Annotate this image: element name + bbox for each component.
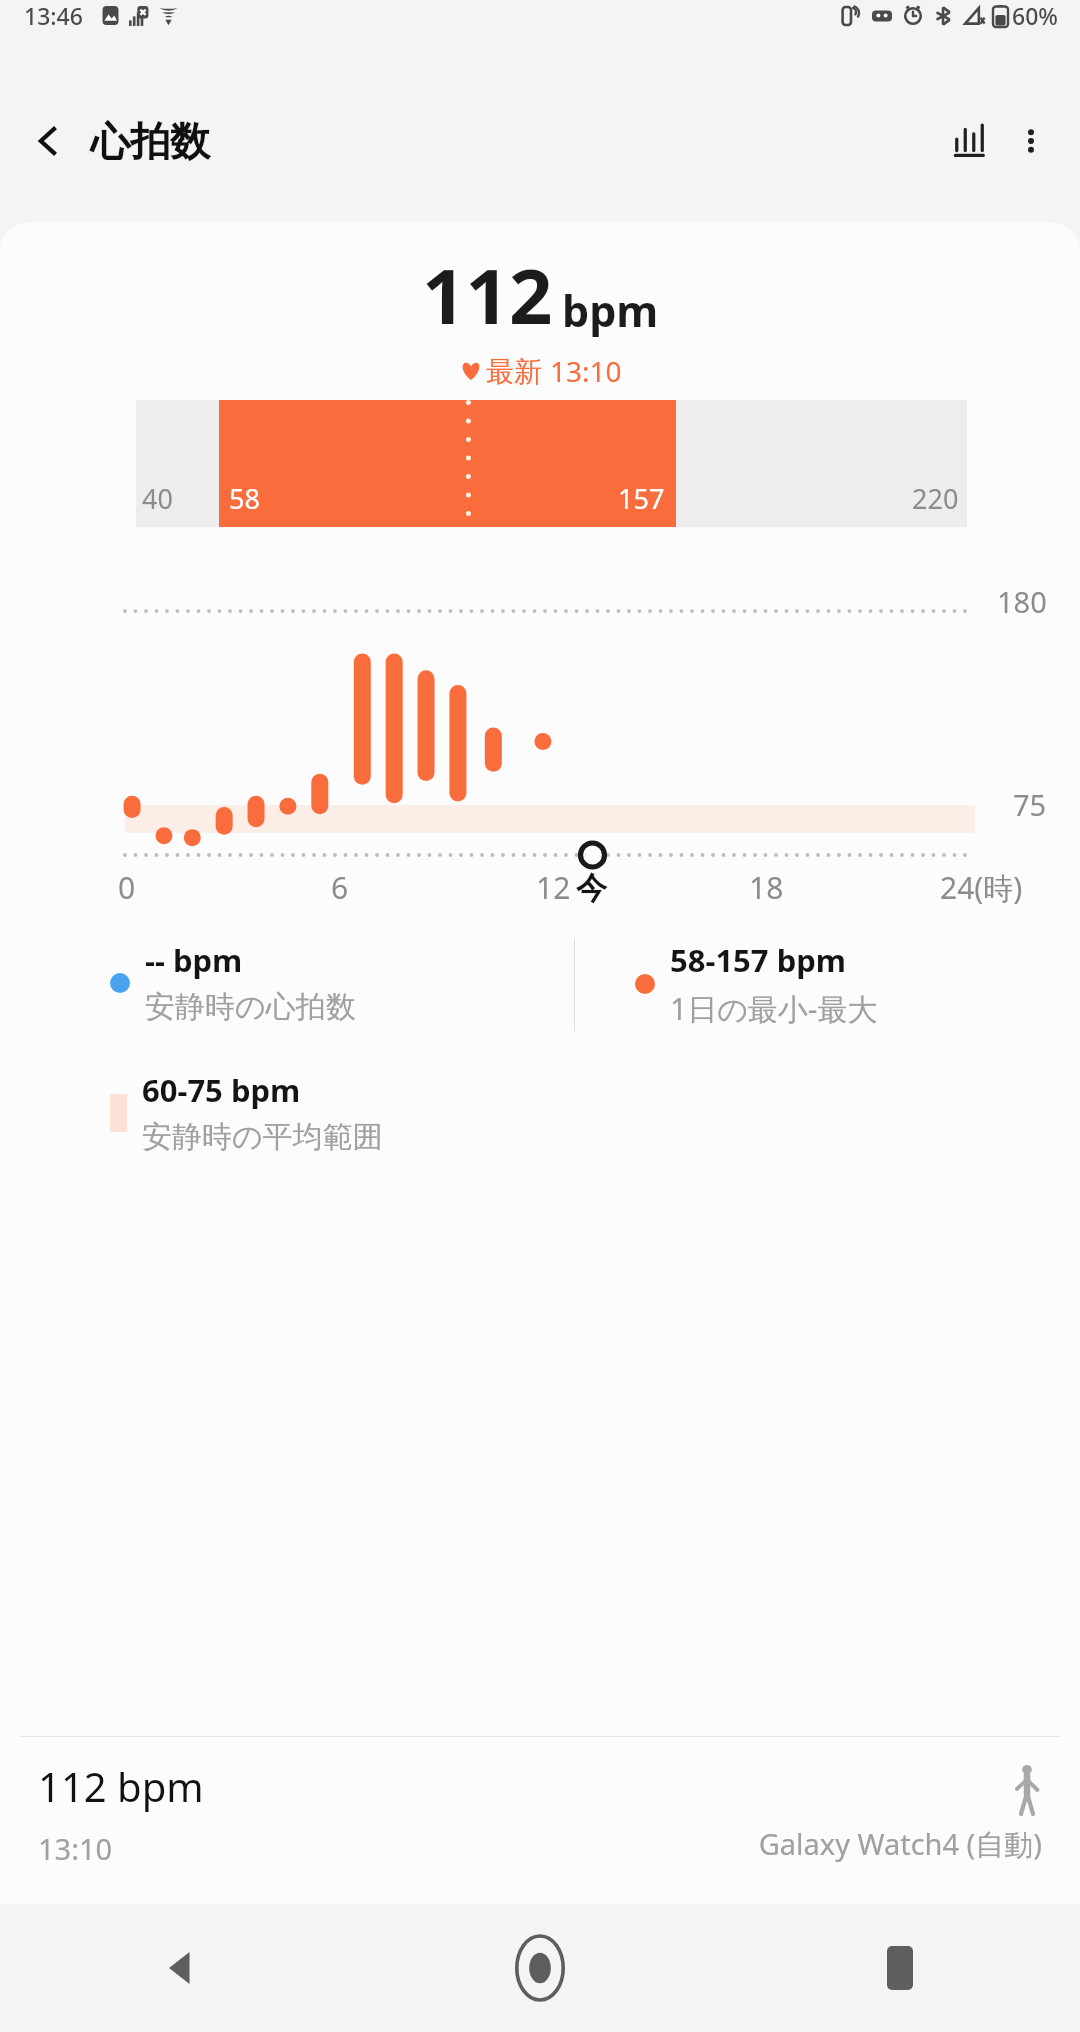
button[interactable]: Recent apps [720, 1904, 1080, 2032]
staticText: 安静時の心拍数 [145, 988, 356, 1026]
staticText: 0 [118, 867, 136, 908]
staticText: 18 [749, 867, 784, 908]
staticText: 最新 [486, 354, 542, 389]
staticText: 安静時の平均範囲 [142, 1118, 383, 1156]
staticText: 今 [576, 869, 607, 908]
staticText: 60% [1012, 0, 1058, 31]
staticText: 75 [1013, 785, 1047, 824]
staticText: 13:10 [38, 1829, 113, 1868]
button[interactable]: Home [360, 1904, 720, 2032]
staticText: 1日の最小-最大 [670, 988, 878, 1029]
staticText: 112 [422, 243, 553, 347]
button[interactable]: Back [0, 1904, 360, 2032]
staticText: 220 [912, 480, 959, 517]
button[interactable]: -- bpm [110, 939, 574, 1026]
button[interactable]: 60-75 bpm [110, 1069, 575, 1156]
staticText: -- bpm [145, 939, 243, 981]
staticText: 13:10 [550, 352, 622, 390]
staticText: 112 bpm [38, 1759, 204, 1813]
button[interactable]: Back [20, 113, 76, 169]
staticText: 13:46 [24, 0, 83, 31]
staticText: 157 [618, 480, 665, 517]
button[interactable]: Chart [938, 110, 1000, 172]
staticText: 6 [331, 867, 349, 908]
staticText: 58 [229, 480, 260, 517]
staticText: 180 [997, 582, 1047, 621]
staticText: 58-157 bpm [670, 939, 847, 981]
staticText: bpm [562, 281, 659, 340]
button[interactable]: More options [1000, 110, 1062, 172]
staticText: 24(時) [940, 867, 1023, 908]
button[interactable]: 58-157 bpm [635, 939, 1040, 1029]
staticText: 12 [536, 867, 571, 908]
staticText: 60-75 bpm [142, 1069, 301, 1111]
staticText: Galaxy Watch4 (自動) [758, 1824, 1042, 1864]
staticText: 40 [142, 480, 173, 517]
button[interactable]: 112 bpm [0, 1737, 1080, 1890]
staticText: 心拍数 [90, 116, 210, 166]
